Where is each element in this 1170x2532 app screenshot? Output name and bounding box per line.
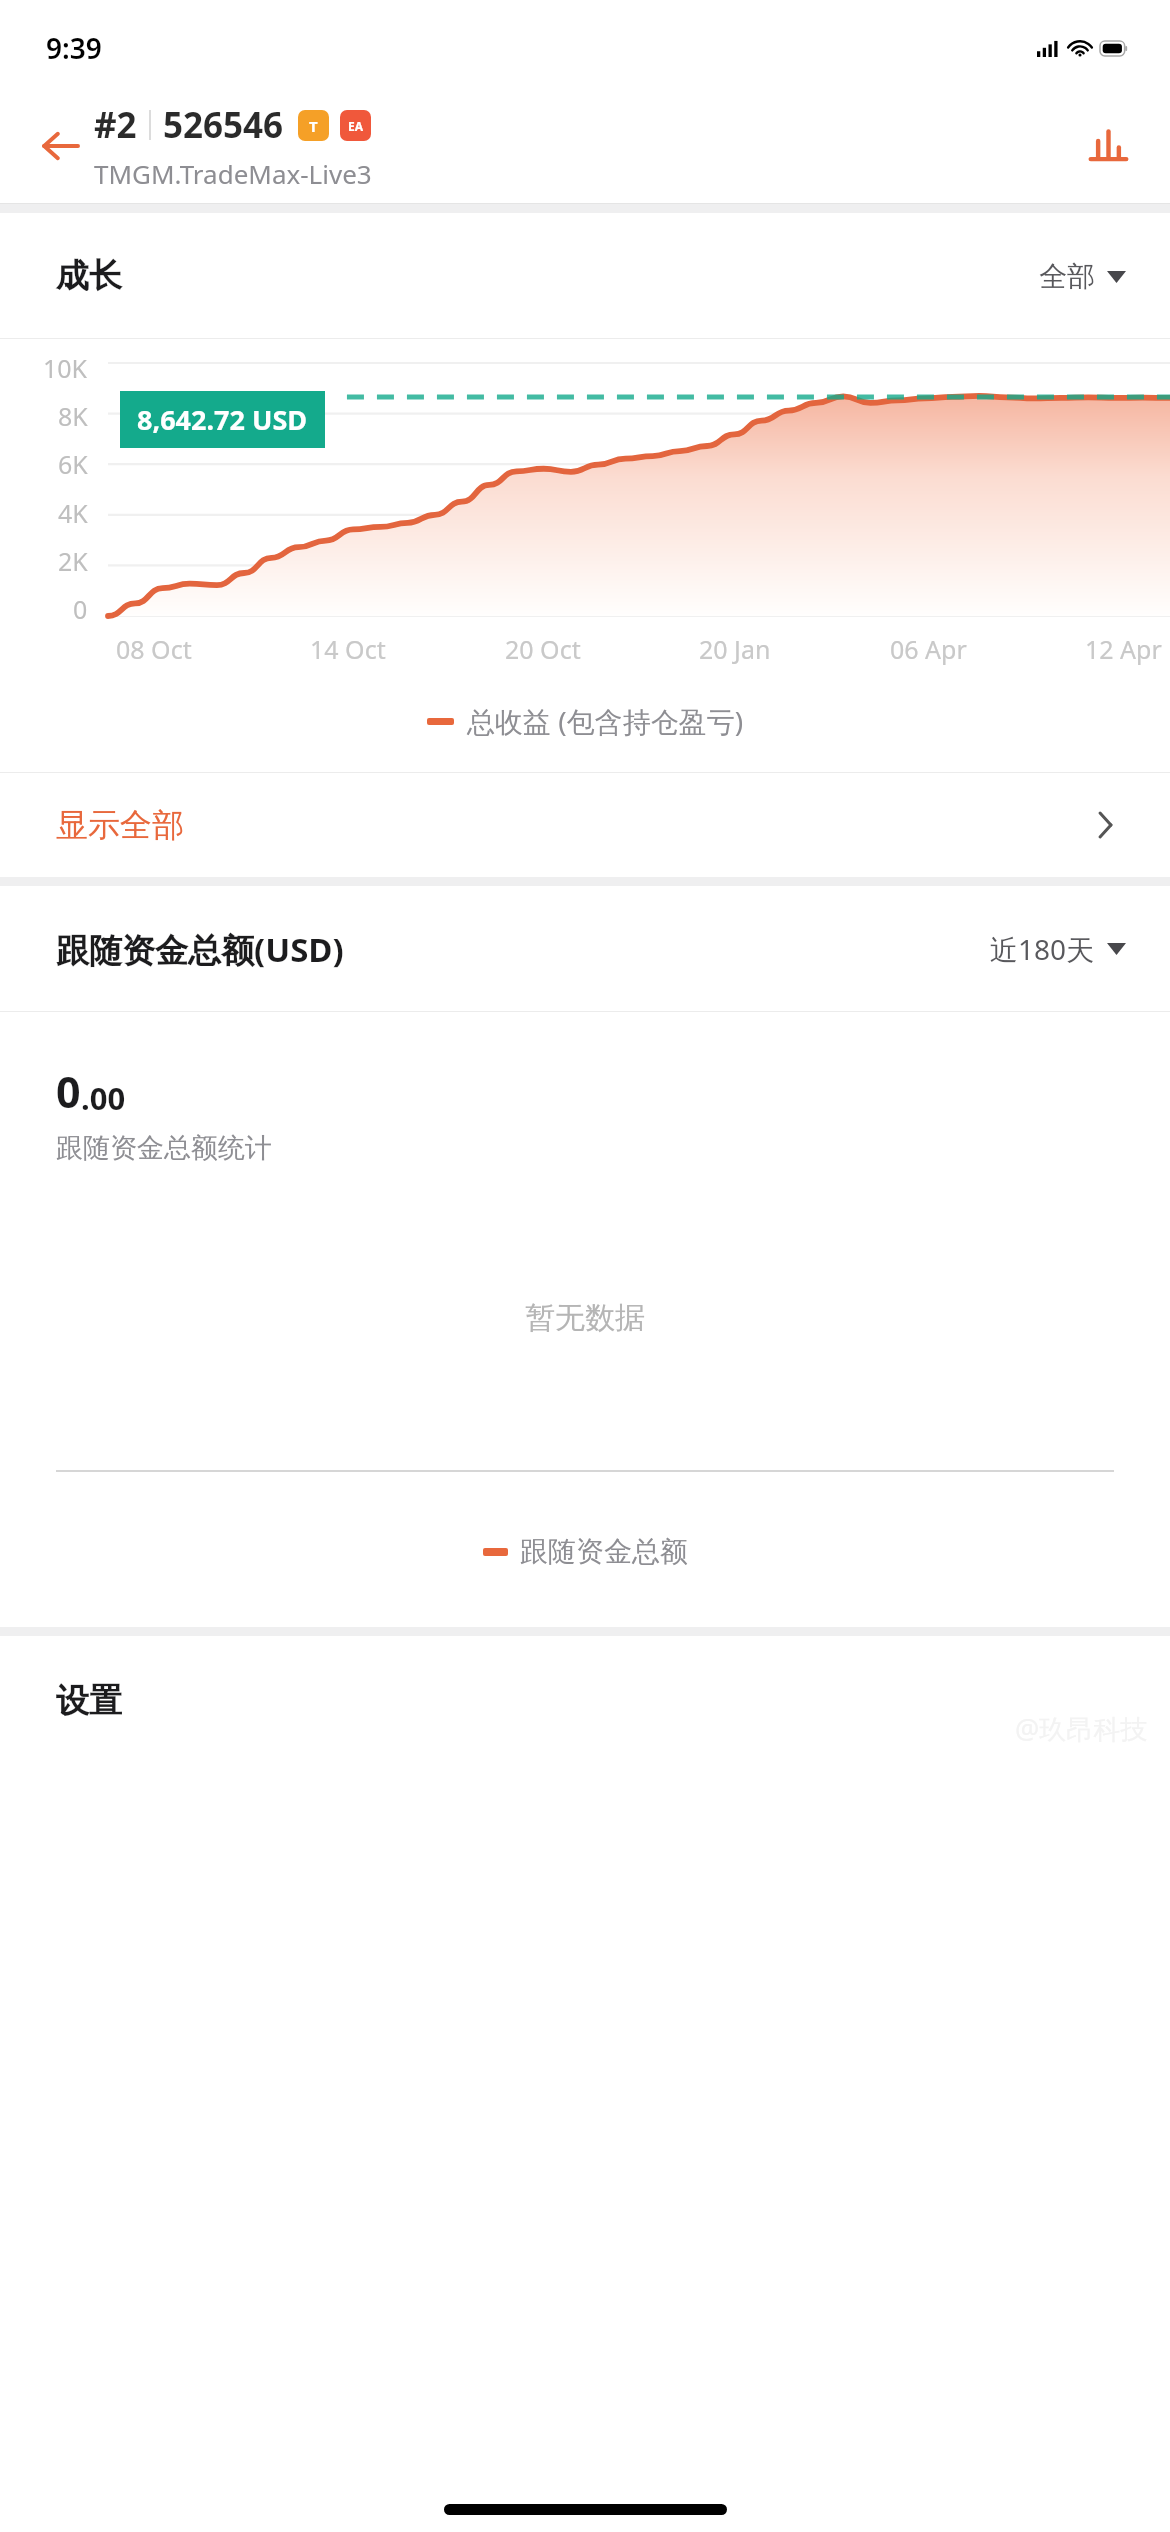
staticText: 2K [58, 544, 88, 578]
staticText: 12 Apr [1085, 632, 1162, 666]
button[interactable]: 显示全部 [0, 773, 1170, 877]
staticText: 6K [58, 447, 88, 481]
staticText: 全部 [1039, 259, 1095, 294]
staticText: 设置 [56, 1680, 122, 1722]
staticText: 暂无数据 [525, 1299, 645, 1337]
staticText: 跟随资金总额统计 [56, 1131, 272, 1165]
staticText: 8K [58, 399, 88, 433]
staticText: 0 [56, 1062, 81, 1121]
button[interactable]: Back [28, 114, 92, 178]
staticText: 成长 [56, 255, 122, 297]
staticText: 显示全部 [56, 805, 184, 845]
staticText: 跟随资金总额 [520, 1534, 688, 1569]
staticText: #2 [94, 101, 137, 149]
staticText: TMGM.TradeMax-Live3 [94, 156, 372, 191]
staticText: .00 [81, 1077, 126, 1119]
staticText: 20 Oct [505, 632, 581, 666]
staticText: 4K [58, 496, 88, 530]
staticText: 08 Oct [116, 632, 192, 666]
staticText: 8,642.72 USD [137, 401, 308, 438]
staticText: T [309, 116, 318, 136]
button[interactable]: 近180天 [990, 930, 1126, 968]
staticText: 14 Oct [310, 632, 386, 666]
staticText: 0 [73, 592, 88, 626]
staticText: 总收益 (包含持仓盈亏) [467, 702, 744, 740]
staticText: 10K [43, 351, 88, 385]
staticText: 9:39 [46, 29, 102, 67]
staticText: 跟随资金总额(USD) [56, 927, 344, 972]
staticText: 20 Jan [699, 632, 771, 666]
staticText: 526546 [163, 101, 284, 149]
button[interactable]: 全部 [1039, 259, 1126, 294]
staticText: EA [348, 118, 364, 134]
staticText: 06 Apr [890, 632, 967, 666]
button[interactable]: Statistics [1078, 116, 1138, 176]
staticText: 近180天 [990, 930, 1095, 968]
staticText: @玖昂科技 [1015, 1710, 1148, 1747]
